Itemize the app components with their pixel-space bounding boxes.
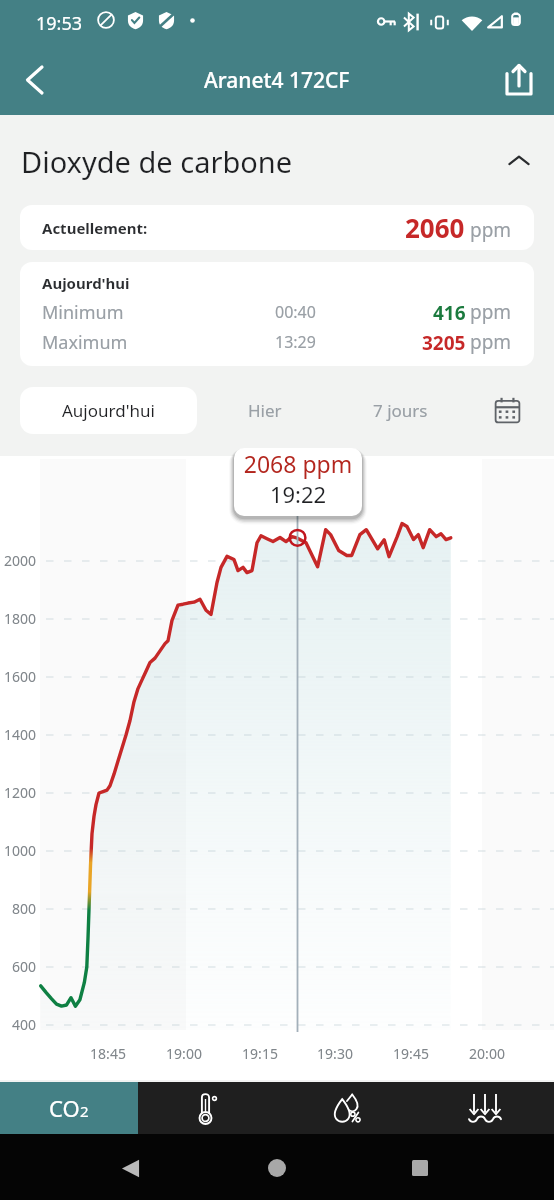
button[interactable]: Hier	[210, 387, 320, 434]
staticText: 7 jours	[373, 399, 428, 422]
button[interactable]: Temperature	[138, 1082, 276, 1134]
button[interactable]: Back	[9, 54, 61, 106]
staticText: 2000	[0, 551, 36, 570]
staticText: 00:40	[275, 301, 316, 323]
staticText: 2	[80, 1101, 89, 1121]
staticText: 19:15	[225, 1044, 295, 1063]
button[interactable]: CO	[0, 1082, 138, 1134]
button[interactable]: Recents	[398, 1146, 442, 1190]
staticText: ppm	[470, 217, 512, 243]
staticText: 1600	[0, 667, 36, 686]
button[interactable]: Actuellement:	[20, 205, 534, 250]
staticText: 2060	[405, 210, 465, 245]
staticText: 2068 ppm	[234, 448, 362, 479]
staticText: 19:53	[36, 11, 83, 36]
staticText: 20:00	[452, 1044, 522, 1063]
button[interactable]: Pressure	[415, 1082, 554, 1134]
staticText: Actuellement:	[42, 218, 148, 238]
staticText: 19:00	[149, 1044, 219, 1063]
staticText: Maximum	[42, 330, 128, 355]
button[interactable]: Home	[255, 1146, 299, 1190]
staticText: Aujourd'hui	[62, 399, 155, 422]
button[interactable]: Back	[108, 1146, 152, 1190]
staticText: 1200	[0, 783, 36, 802]
button[interactable]: Aujourd'hui	[20, 387, 197, 434]
staticText: 416	[433, 300, 466, 326]
staticText: 600	[0, 957, 36, 976]
staticText: Hier	[248, 399, 282, 422]
staticText: 13:29	[275, 331, 316, 353]
staticText: 18:45	[73, 1044, 143, 1063]
button[interactable]: 7 jours	[340, 387, 460, 434]
staticText: 1400	[0, 725, 36, 744]
button[interactable]: Aujourd'hui	[20, 262, 534, 366]
staticText: 400	[0, 1015, 36, 1034]
button[interactable]: Calendar	[478, 387, 536, 434]
staticText: Aranet4 172CF	[204, 66, 350, 95]
staticText: Minimum	[42, 300, 124, 325]
button[interactable]: Dioxyde de carbone	[0, 138, 554, 184]
button[interactable]: Humidity	[276, 1082, 415, 1134]
staticText: CO	[49, 1093, 80, 1123]
button[interactable]: Share	[493, 54, 545, 106]
staticText: 1000	[0, 841, 36, 860]
staticText: ppm	[470, 299, 512, 325]
staticText: 19:30	[300, 1044, 370, 1063]
staticText: 1800	[0, 609, 36, 628]
staticText: 19:45	[376, 1044, 446, 1063]
staticText: 19:22	[234, 479, 362, 509]
staticText: Dioxyde de carbone	[21, 142, 293, 181]
staticText: 800	[0, 899, 36, 918]
staticText: Aujourd'hui	[42, 273, 130, 293]
staticText: ppm	[470, 329, 512, 355]
staticText: 3205	[422, 330, 466, 356]
